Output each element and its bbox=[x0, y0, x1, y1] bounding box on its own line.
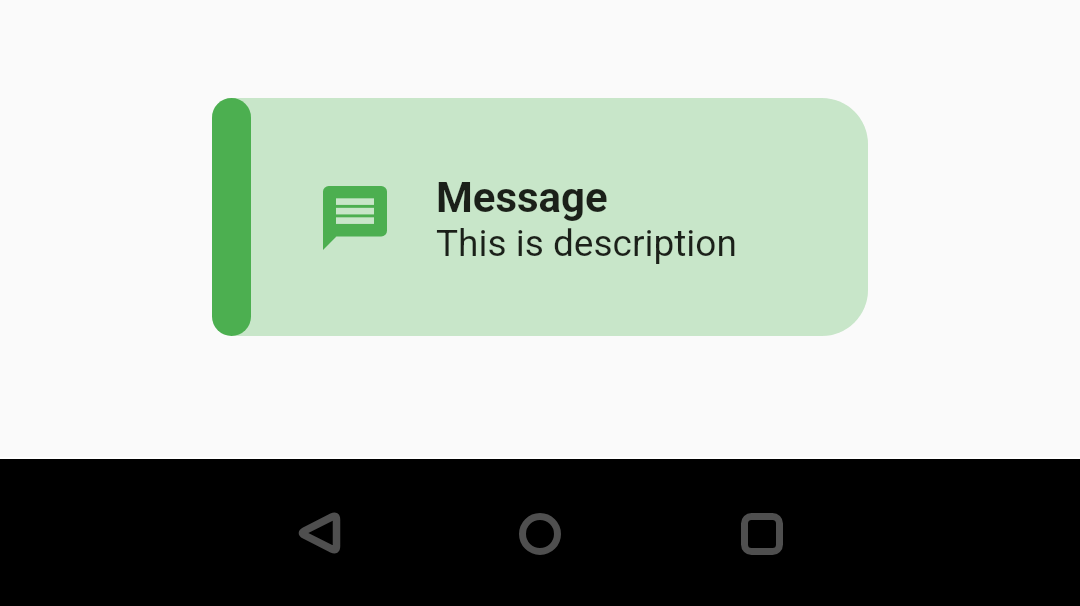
button[interactable]: Message bbox=[212, 98, 868, 336]
button[interactable]: Back bbox=[273, 485, 369, 581]
button[interactable]: Home bbox=[492, 486, 588, 582]
staticText: Message bbox=[436, 173, 608, 222]
button[interactable]: Recent apps bbox=[714, 486, 810, 582]
staticText: This is description bbox=[436, 222, 737, 265]
